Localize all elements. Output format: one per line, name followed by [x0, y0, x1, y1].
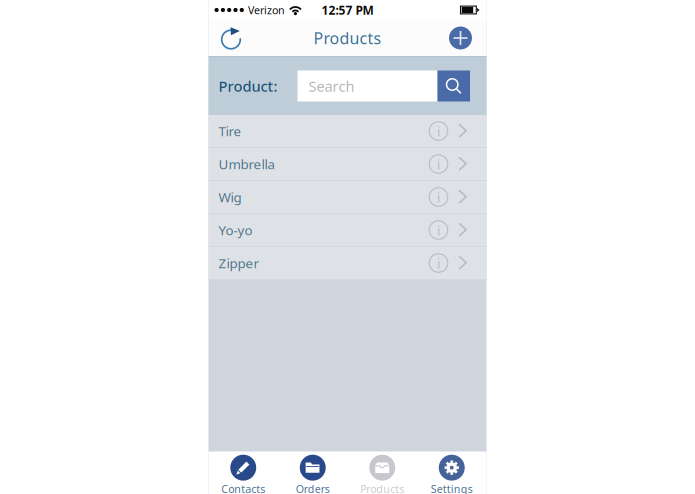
button[interactable]: Contacts [208, 451, 278, 494]
staticText: Verizon [248, 3, 285, 17]
button[interactable]: Add [440, 20, 480, 56]
button[interactable]: Refresh [210, 20, 250, 56]
button[interactable]: Search [437, 70, 470, 101]
staticText: Settings [431, 482, 473, 494]
button[interactable]: Yo-yo [208, 214, 486, 247]
staticText: i [437, 254, 440, 272]
button[interactable]: Wig [208, 181, 486, 214]
staticText: i [437, 221, 440, 239]
staticText: Wig [218, 188, 241, 206]
staticText: Yo-yo [218, 221, 252, 239]
staticText: Products [313, 27, 381, 49]
staticText: Zipper [218, 254, 259, 272]
staticText: i [437, 122, 440, 140]
staticText: Contacts [221, 482, 265, 494]
staticText: Product: [218, 76, 277, 96]
button[interactable]: Tire [208, 115, 486, 148]
button[interactable]: Products [347, 451, 417, 494]
staticText: Products [360, 482, 404, 494]
button[interactable]: Zipper [208, 247, 486, 280]
button[interactable]: Orders [278, 451, 347, 494]
button[interactable]: Umbrella [208, 148, 486, 181]
staticText: Orders [296, 482, 330, 494]
staticText: i [437, 155, 440, 173]
staticText: Tire [218, 122, 241, 140]
staticText: i [437, 188, 440, 206]
staticText: 12:57 PM [321, 2, 373, 18]
staticText: Search [308, 76, 354, 96]
staticText: Umbrella [218, 155, 274, 173]
button[interactable]: Settings [417, 451, 486, 494]
